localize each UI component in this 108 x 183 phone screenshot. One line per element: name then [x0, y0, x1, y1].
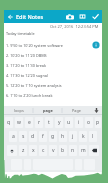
- button[interactable]: Take photo: [63, 10, 76, 23]
- button[interactable]: Voice input: [91, 106, 102, 115]
- button[interactable]: m: [79, 145, 87, 156]
- staticText: k: [82, 133, 85, 140]
- staticText: b: [61, 147, 65, 154]
- button[interactable]: Save note: [89, 10, 102, 23]
- staticText: q: [7, 119, 11, 126]
- button[interactable]: Info: [92, 41, 100, 49]
- button[interactable]: c: [39, 145, 47, 156]
- button[interactable]: h: [59, 131, 67, 142]
- staticText: 2. 10'20 to 11'20 DBMS: [6, 53, 47, 58]
- button[interactable]: k: [79, 131, 87, 142]
- button[interactable]: Back: [4, 10, 16, 23]
- button[interactable]: f: [39, 131, 47, 142]
- button[interactable]: w: [15, 117, 23, 128]
- staticText: z: [22, 147, 25, 154]
- staticText: a: [12, 133, 15, 140]
- staticText: m: [81, 147, 86, 154]
- button[interactable]: r: [35, 117, 43, 128]
- staticText: t: [48, 119, 50, 126]
- button[interactable]: e: [25, 117, 33, 128]
- button[interactable]: a: [9, 131, 17, 142]
- staticText: page: [43, 108, 53, 113]
- staticText: h: [61, 133, 65, 140]
- staticText: Page: [72, 108, 81, 113]
- staticText: e: [28, 119, 31, 126]
- staticText: u: [67, 119, 71, 126]
- staticText: v: [52, 147, 55, 154]
- staticText: 1. 9'50 to 10'20 system software: [6, 43, 63, 48]
- staticText: l: [92, 133, 94, 140]
- staticText: 6. 1'10 to 2'20 lunch break: [6, 93, 53, 98]
- staticText: p: [96, 119, 100, 126]
- staticText: 5. 12'20 to 1'10 system analysis: [6, 83, 62, 88]
- staticText: n: [71, 147, 75, 154]
- staticText: x: [32, 147, 35, 154]
- button[interactable]: Page: [62, 106, 91, 115]
- button[interactable]: y: [55, 117, 63, 128]
- button[interactable]: q: [5, 117, 13, 128]
- staticText: s: [22, 133, 25, 140]
- button[interactable]: v: [49, 145, 57, 156]
- button[interactable]: d: [29, 131, 37, 142]
- staticText: w: [17, 119, 21, 126]
- button[interactable]: z: [19, 145, 27, 156]
- button[interactable]: o: [85, 117, 93, 128]
- staticText: j: [72, 133, 74, 140]
- staticText: r: [38, 119, 41, 126]
- staticText: o: [87, 119, 91, 126]
- button[interactable]: Backspace: [89, 145, 99, 156]
- button[interactable]: p: [95, 117, 101, 128]
- staticText: Oct 27, 2016 12:23:54 PM: [50, 24, 99, 29]
- staticText: c: [42, 147, 45, 154]
- button[interactable]: s: [19, 131, 27, 142]
- button[interactable]: g: [49, 131, 57, 142]
- staticText: 3. 11'20 to 11'30 break: [6, 63, 47, 68]
- button[interactable]: page: [33, 106, 62, 115]
- button[interactable]: x: [29, 145, 37, 156]
- button[interactable]: i: [75, 117, 83, 128]
- button[interactable]: t: [45, 117, 53, 128]
- button[interactable]: l: [89, 131, 97, 142]
- button[interactable]: n: [69, 145, 77, 156]
- staticText: 4. 11'30 to 12'20 sugnal: [6, 73, 48, 78]
- button[interactable]: u: [65, 117, 73, 128]
- button[interactable]: b: [59, 145, 67, 156]
- staticText: f: [42, 133, 44, 140]
- staticText: d: [31, 133, 35, 140]
- staticText: y: [58, 119, 61, 126]
- button[interactable]: Attach image: [76, 10, 89, 23]
- staticText: i: [78, 119, 80, 126]
- staticText: g: [51, 133, 55, 140]
- button[interactable]: Shift: [7, 145, 17, 156]
- staticText: Today timetable: [6, 31, 35, 36]
- staticText: Edit Notes: [16, 13, 44, 20]
- staticText: loops: [14, 108, 24, 113]
- button[interactable]: j: [69, 131, 77, 142]
- button[interactable]: loops: [4, 106, 33, 115]
